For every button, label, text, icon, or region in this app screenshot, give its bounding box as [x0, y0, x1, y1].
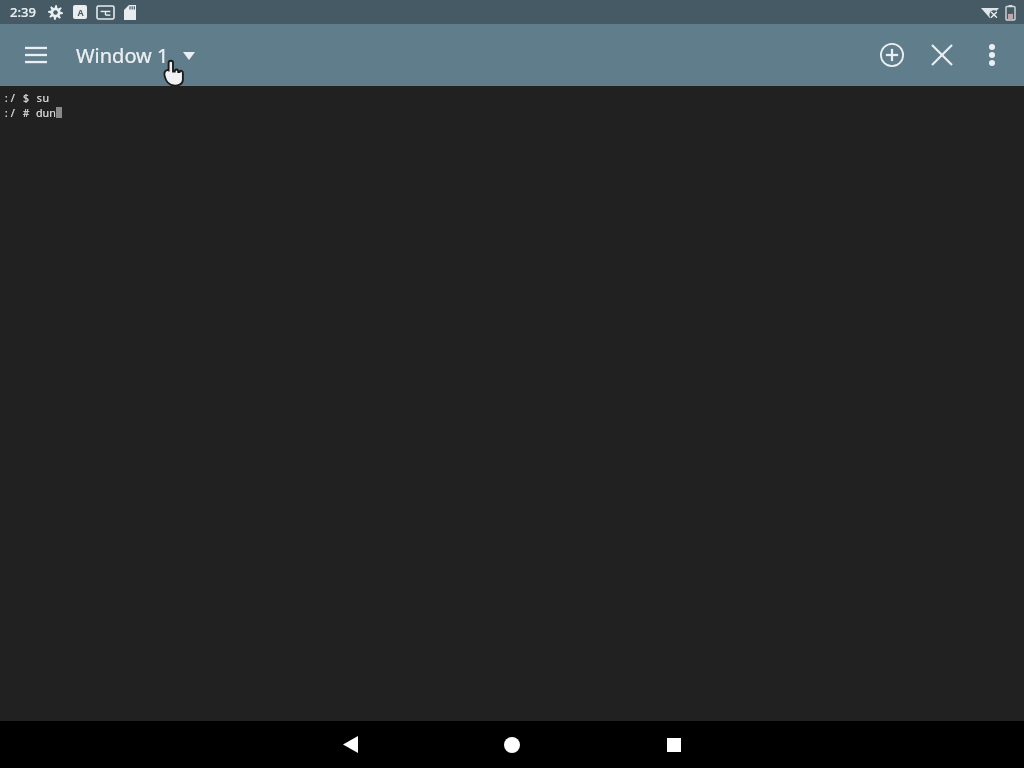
staticText: :/ # dun	[3, 105, 56, 120]
staticText: :/ $ su	[3, 90, 50, 105]
staticText: 2:39	[10, 3, 36, 21]
button[interactable]: Back	[295, 721, 405, 768]
staticText: Window 1	[76, 42, 169, 69]
button[interactable]: More options	[968, 31, 1016, 79]
button[interactable]: Open navigation drawer	[12, 31, 60, 79]
button[interactable]: Home	[457, 721, 567, 768]
staticText: A	[77, 6, 84, 18]
button[interactable]: Close window	[918, 31, 966, 79]
button[interactable]: New window	[868, 31, 916, 79]
button[interactable]: Recent apps	[619, 721, 729, 768]
button[interactable]: Window 1	[72, 34, 199, 77]
